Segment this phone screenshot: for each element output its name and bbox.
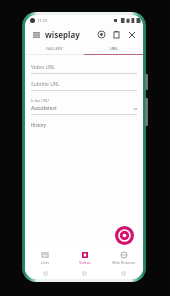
button[interactable]: Menu xyxy=(30,29,42,41)
staticText: Web Browser xyxy=(112,260,136,265)
button[interactable]: URL xyxy=(84,43,143,54)
staticText: Lists xyxy=(41,260,49,265)
staticText: History xyxy=(31,122,47,128)
button[interactable]: GALLERY xyxy=(25,43,84,54)
button[interactable]: Web Browser xyxy=(104,248,143,268)
button[interactable]: Play video xyxy=(115,226,134,245)
button[interactable]: Lists xyxy=(25,248,65,268)
button[interactable]: Back xyxy=(25,268,65,279)
button[interactable]: Home xyxy=(65,268,104,279)
staticText: GALLERY xyxy=(46,46,63,51)
staticText: Autodetect xyxy=(31,105,57,112)
button[interactable]: Cast xyxy=(95,28,108,41)
button[interactable]: Videos xyxy=(65,248,104,268)
staticText: Video URL xyxy=(31,64,55,71)
button[interactable]: Subtitle URL xyxy=(31,81,137,91)
button[interactable]: Recents xyxy=(104,268,143,279)
button[interactable]: Close xyxy=(125,28,138,41)
button[interactable]: Video URL xyxy=(31,64,137,74)
button[interactable]: Autodetect xyxy=(31,105,137,112)
staticText: Videos xyxy=(79,260,91,265)
staticText: Is live URL? xyxy=(31,98,50,103)
staticText: Subtitle URL xyxy=(31,81,60,88)
staticText: wiseplay xyxy=(45,29,80,40)
staticText: 11:23 xyxy=(37,18,48,23)
staticText: URL xyxy=(110,46,118,51)
button[interactable]: Paste xyxy=(110,28,123,41)
